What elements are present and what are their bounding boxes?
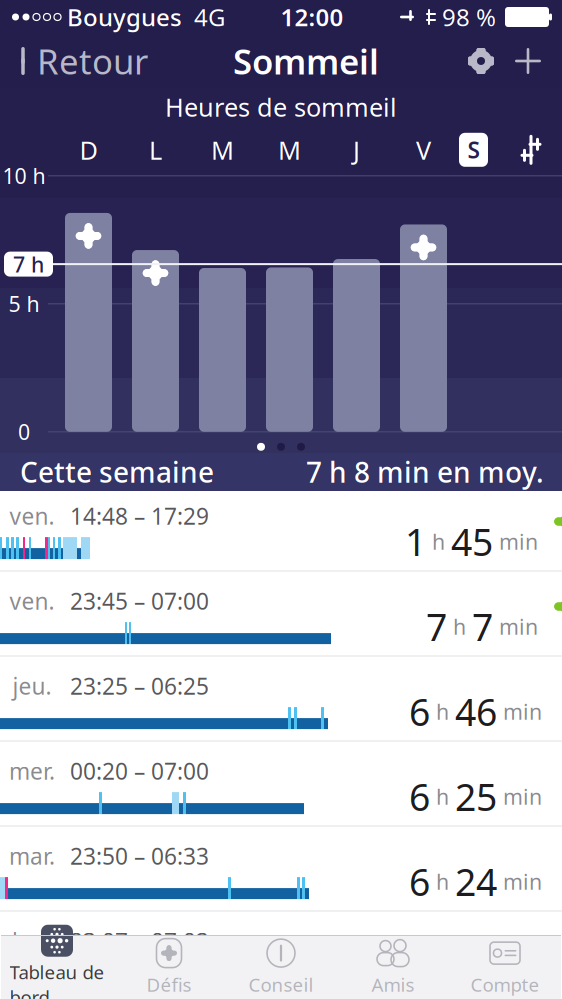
staticText: Conseil — [248, 972, 313, 997]
staticText: 23:50 – 06:33 — [70, 841, 209, 871]
staticText: lun. — [12, 926, 52, 956]
staticText: M — [278, 133, 301, 167]
button[interactable]: Conseil — [225, 935, 337, 999]
staticText: 5 h — [8, 290, 39, 318]
staticText: 6 — [409, 772, 430, 821]
staticText: 7 — [405, 942, 426, 991]
button[interactable]: ven. — [0, 491, 562, 576]
staticText: 25 — [455, 772, 497, 821]
staticText: 7 h — [13, 250, 44, 278]
staticText: 13 — [451, 942, 493, 991]
button[interactable]: mar. — [0, 831, 562, 916]
staticText: 6 — [409, 687, 430, 736]
button[interactable]: Plein écran — [514, 133, 562, 167]
staticText: 00:20 – 07:00 — [70, 756, 209, 786]
staticText: Tableau de bord — [9, 960, 104, 999]
staticText: Retour — [37, 38, 148, 84]
staticText: h — [430, 697, 455, 726]
staticText: 6 — [409, 857, 430, 906]
staticText: min — [497, 867, 542, 896]
staticText: 1 — [405, 517, 426, 566]
staticText: L — [149, 133, 162, 167]
staticText: 98 % — [442, 1, 496, 33]
staticText: Heures de sommeil — [165, 90, 397, 124]
staticText: h — [426, 527, 451, 556]
staticText: min — [493, 527, 538, 556]
staticText: 23:25 – 06:25 — [70, 671, 209, 701]
staticText: S — [467, 135, 479, 165]
staticText: 12:00 — [280, 1, 343, 33]
button[interactable]: jeu. — [0, 661, 562, 746]
staticText: ven. — [9, 586, 54, 616]
staticText: min — [497, 782, 542, 811]
staticText: J — [353, 133, 360, 167]
button[interactable]: Ajouter — [498, 41, 562, 81]
button[interactable]: ven. — [0, 576, 562, 661]
button[interactable]: mer. — [0, 746, 562, 831]
staticText: 7 — [472, 602, 493, 651]
staticText: M — [211, 133, 234, 167]
staticText: h — [430, 867, 455, 896]
button[interactable]: lun. — [0, 916, 562, 999]
button[interactable]: Compte — [449, 935, 561, 999]
staticText: V — [416, 133, 431, 167]
staticText: 14:48 – 17:29 — [70, 501, 209, 531]
staticText: Amis — [371, 972, 414, 997]
staticText: Défis — [146, 972, 191, 997]
staticText: D — [79, 133, 97, 167]
button[interactable]: Retour — [0, 34, 148, 88]
staticText: 10 h — [2, 162, 45, 190]
staticText: 45 — [451, 517, 493, 566]
button[interactable]: Tableau de bord — [1, 935, 113, 999]
staticText: Bouygues — [67, 1, 182, 33]
staticText: 24 — [455, 857, 497, 906]
staticText: min — [493, 612, 538, 641]
button[interactable]: Défis — [113, 935, 225, 999]
staticText: min — [497, 697, 542, 726]
staticText: jeu. — [12, 671, 51, 701]
button[interactable]: Amis — [337, 935, 449, 999]
staticText: min — [493, 952, 538, 981]
staticText: h — [430, 782, 455, 811]
staticText: ven. — [9, 501, 54, 531]
staticText: h — [447, 612, 472, 641]
staticText: 4G — [194, 1, 225, 33]
staticText: 23:07 – 07:02 — [70, 926, 209, 956]
staticText: 0 — [18, 418, 30, 446]
staticText: Cette semaine — [20, 453, 214, 491]
button[interactable]: Réglages — [464, 44, 498, 78]
staticText: 7 — [426, 602, 447, 651]
staticText: 46 — [455, 687, 497, 736]
staticText: Sommeil — [233, 38, 379, 84]
staticText: 23:45 – 07:00 — [70, 586, 209, 616]
staticText: mar. — [9, 841, 55, 871]
staticText: mer. — [9, 756, 55, 786]
staticText: Compte — [470, 972, 539, 997]
staticText: 7 h 8 min en moy. — [306, 453, 544, 491]
